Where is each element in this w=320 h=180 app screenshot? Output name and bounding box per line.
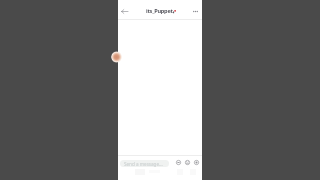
button[interactable]: Add [192,158,201,167]
staticText: its_Puppet [146,7,173,15]
button[interactable]: More options [190,6,201,17]
button[interactable]: Camera [174,158,183,167]
button[interactable]: Stickers [183,158,192,167]
button[interactable]: its_Puppet [146,5,176,16]
staticText: Send a message... [124,161,163,167]
button[interactable]: Send a message... [120,160,169,167]
button[interactable]: Back [119,6,130,17]
